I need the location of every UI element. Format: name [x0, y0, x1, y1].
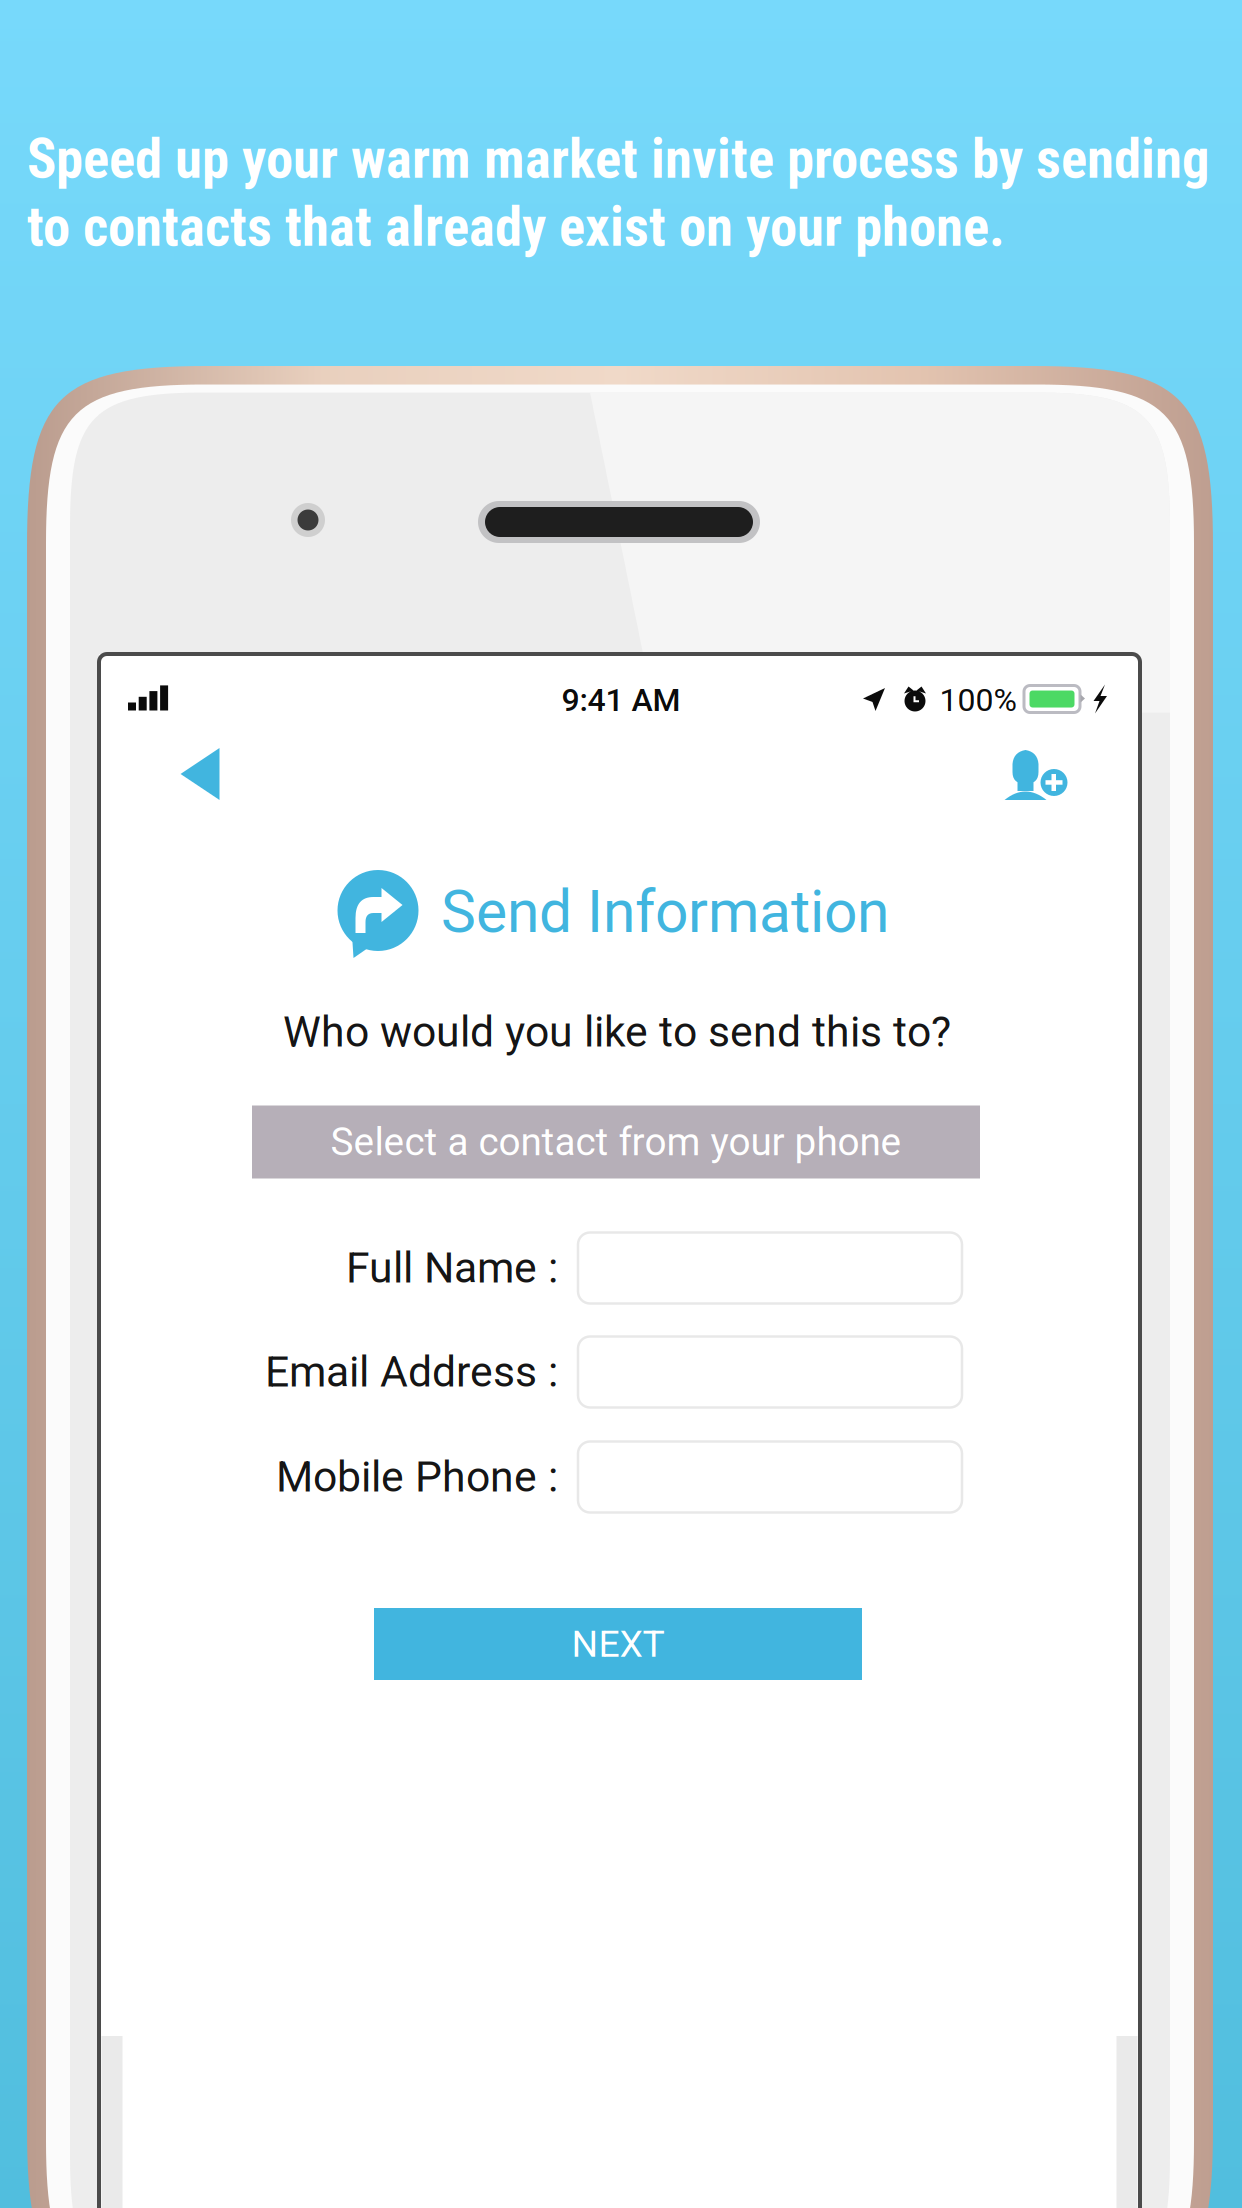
staticText: Full Name :: [346, 1243, 558, 1293]
button[interactable]: Add contact: [988, 729, 1084, 821]
staticText: 9:41 AM: [561, 681, 680, 719]
staticText: 100%: [939, 681, 1016, 719]
button[interactable]: Back: [152, 728, 248, 820]
button[interactable]: Mobile Phone: [578, 1441, 962, 1512]
button[interactable]: NEXT: [374, 1608, 862, 1680]
button[interactable]: Full Name: [578, 1232, 962, 1303]
staticText: Mobile Phone :: [276, 1452, 558, 1502]
staticText: Who would you like to send this to?: [283, 1007, 951, 1057]
staticText: to contacts that already exist on your p…: [27, 195, 1005, 259]
staticText: Email Address :: [265, 1347, 558, 1397]
staticText: Send Information: [441, 878, 889, 946]
button[interactable]: Email Address: [578, 1336, 962, 1407]
button[interactable]: Select a contact from your phone: [252, 1105, 980, 1178]
staticText: NEXT: [571, 1622, 664, 1666]
staticText: Select a contact from your phone: [330, 1119, 901, 1165]
staticText: Speed up your warm market invite process…: [27, 127, 1210, 191]
